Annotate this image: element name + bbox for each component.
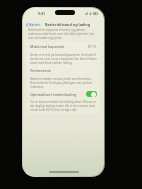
- button[interactable]: Ytelsesevne: [27, 66, 100, 75]
- staticText: Batteri: [29, 22, 41, 27]
- staticText: Ytelsesevne: [30, 68, 51, 73]
- staticText: 87 %: [88, 44, 97, 49]
- button[interactable]: Batteri: [23, 20, 44, 29]
- button[interactable]: Optimalisert batterilading: [27, 90, 100, 98]
- staticText: Optimalisert batterilading: [30, 92, 77, 97]
- button[interactable]: Optimalisert batterilading på: [86, 91, 97, 97]
- staticText: Batteriet har begrenset levetid, og ytel…: [28, 28, 99, 40]
- staticText: 9:41: [38, 11, 45, 16]
- staticText: For å redusere batteriets aldring lærer …: [30, 100, 97, 112]
- button[interactable]: Maksimal kapasitet: [27, 42, 100, 51]
- staticText: Dette er et mål på batterikapasiteten i …: [30, 53, 97, 65]
- staticText: Maksimal kapasitet: [30, 44, 65, 49]
- staticText: Batteritilstand og lading: [45, 22, 91, 27]
- staticText: Batteriet støtter normal ytelse som forv…: [30, 77, 97, 89]
